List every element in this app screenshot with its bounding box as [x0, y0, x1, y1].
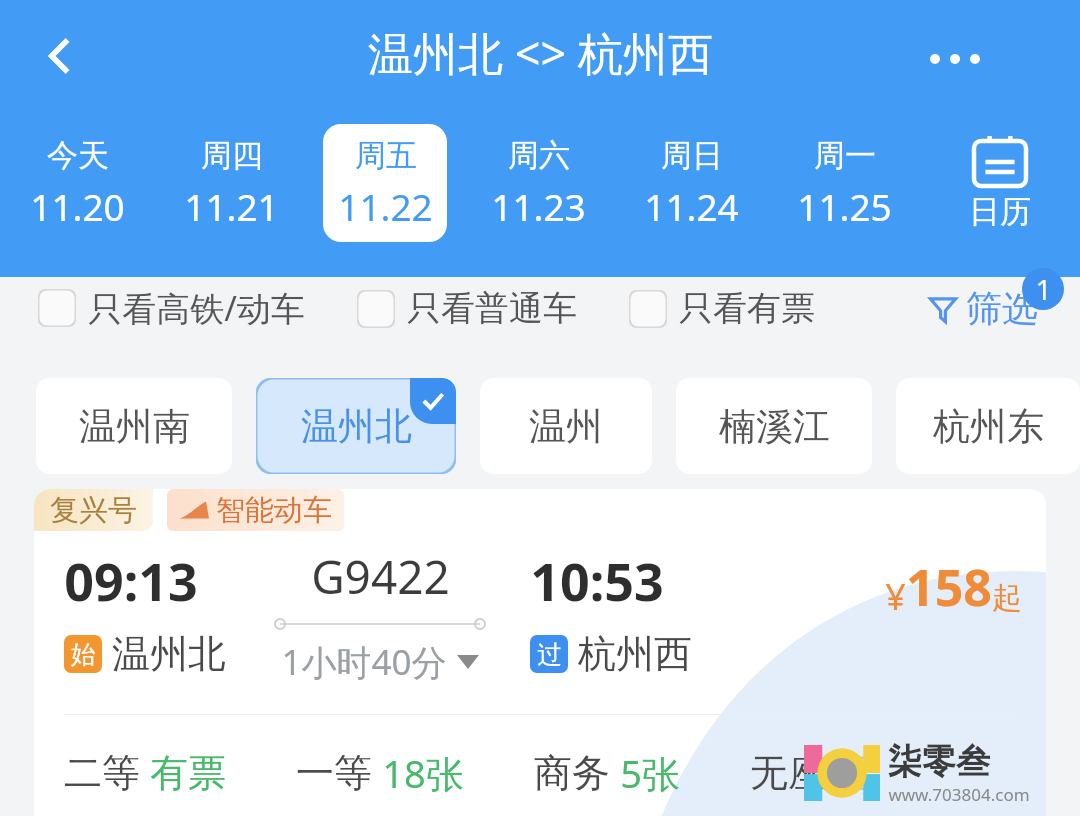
staticText: 起	[992, 579, 1022, 617]
button[interactable]: 温州南	[36, 378, 232, 474]
staticText: 11.25	[797, 181, 892, 231]
staticText: 温州北	[301, 403, 412, 450]
staticText: 11.22	[338, 181, 433, 231]
button[interactable]: 只看高铁/动车	[38, 277, 305, 339]
button[interactable]: 只看有票	[629, 279, 815, 338]
staticText: 周一	[814, 136, 876, 175]
button[interactable]: 楠溪江	[676, 378, 872, 474]
staticText: 日历	[969, 192, 1031, 231]
staticText: 无座	[750, 749, 826, 797]
staticText: 只看普通车	[407, 287, 577, 330]
button[interactable]: 周五	[323, 124, 447, 242]
staticText: 筛选	[966, 286, 1038, 331]
staticText: 杭州西	[578, 630, 692, 678]
button[interactable]: 只看普通车	[357, 279, 577, 338]
staticText: 今天	[47, 136, 109, 175]
staticText: 158	[906, 553, 992, 621]
staticText: 只看高铁/动车	[88, 285, 305, 331]
staticText: 11.20	[30, 181, 125, 231]
staticText: 1	[1035, 270, 1052, 308]
staticText: 杭州东	[933, 403, 1044, 450]
staticText: 09:13	[64, 545, 198, 616]
button[interactable]: 筛选	[928, 278, 1058, 339]
staticText: 11.21	[184, 181, 279, 231]
staticText: 10:53	[530, 545, 664, 616]
staticText: 周四	[201, 136, 263, 175]
staticText: G9422	[311, 545, 450, 608]
staticText: ¥	[885, 572, 906, 621]
staticText: 周日	[661, 136, 723, 175]
staticText: 楠溪江	[719, 403, 830, 450]
staticText: 温州北	[112, 630, 226, 678]
staticText: 过	[537, 639, 562, 670]
staticText: 无	[836, 749, 874, 797]
staticText: 18张	[382, 747, 464, 799]
staticText: www.703804.com	[888, 783, 1030, 806]
button[interactable]: Calendar	[920, 118, 1080, 248]
staticText: 周六	[508, 136, 570, 175]
button[interactable]: 温州北	[256, 378, 456, 474]
button[interactable]: More options	[900, 36, 1010, 82]
staticText: 始	[71, 639, 96, 670]
staticText: 只看有票	[679, 287, 815, 330]
button[interactable]: 杭州东	[896, 378, 1080, 474]
staticText: 智能动车	[216, 492, 332, 529]
staticText: 5张	[620, 747, 680, 799]
button[interactable]: 温州	[480, 378, 652, 474]
staticText: 柒零叁	[888, 740, 990, 783]
staticText: 周五	[355, 136, 417, 175]
button[interactable]: 今天	[15, 124, 139, 242]
staticText: 一等	[296, 749, 372, 797]
staticText: 温州南	[79, 403, 190, 450]
staticText: 温州	[529, 403, 603, 450]
staticText: 11.23	[491, 181, 586, 231]
button[interactable]: Back	[22, 18, 98, 94]
button[interactable]: 周一	[782, 124, 906, 242]
button[interactable]: 周六	[476, 124, 600, 242]
staticText: 二等	[64, 749, 140, 797]
staticText: 复兴号	[50, 492, 137, 529]
staticText: 温州北 <> 杭州西	[368, 22, 713, 83]
button[interactable]: 复兴号	[34, 489, 1046, 816]
button[interactable]: 周四	[169, 124, 293, 242]
button[interactable]: 周日	[629, 124, 753, 242]
staticText: 商务	[534, 749, 610, 797]
staticText: 1小时40分	[281, 638, 447, 686]
staticText: 11.24	[644, 181, 739, 231]
staticText: 有票	[150, 749, 226, 797]
